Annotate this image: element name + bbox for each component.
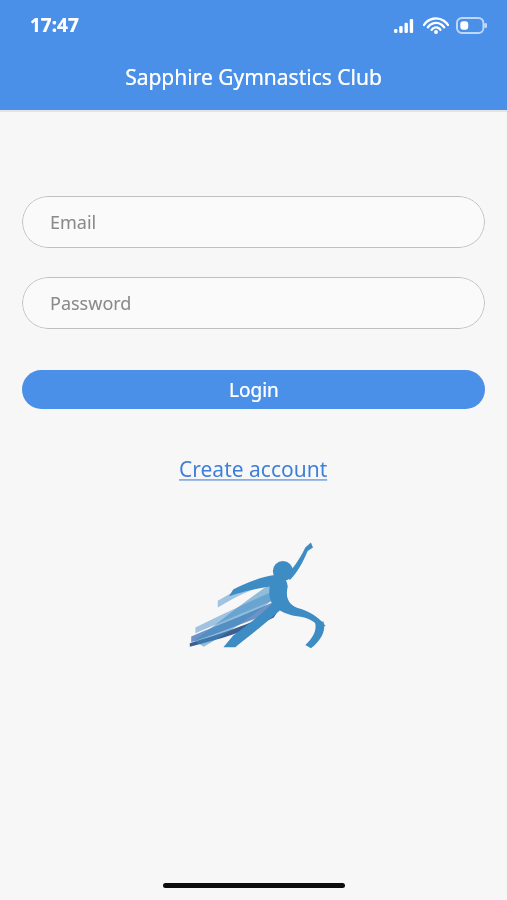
other: Sapphire Gymnastics Club logo bbox=[187, 538, 327, 650]
button[interactable]: Password bbox=[22, 277, 485, 329]
staticText: Password bbox=[50, 291, 132, 316]
staticText: Email bbox=[50, 210, 97, 235]
button[interactable]: Email bbox=[22, 196, 485, 248]
staticText: 17:47 bbox=[30, 12, 79, 38]
button[interactable]: Login bbox=[22, 370, 485, 409]
staticText: Sapphire Gymnastics Club bbox=[125, 63, 382, 92]
staticText: Login bbox=[229, 377, 279, 403]
staticText: Create account bbox=[179, 455, 328, 484]
button[interactable]: Create account bbox=[171, 451, 336, 488]
